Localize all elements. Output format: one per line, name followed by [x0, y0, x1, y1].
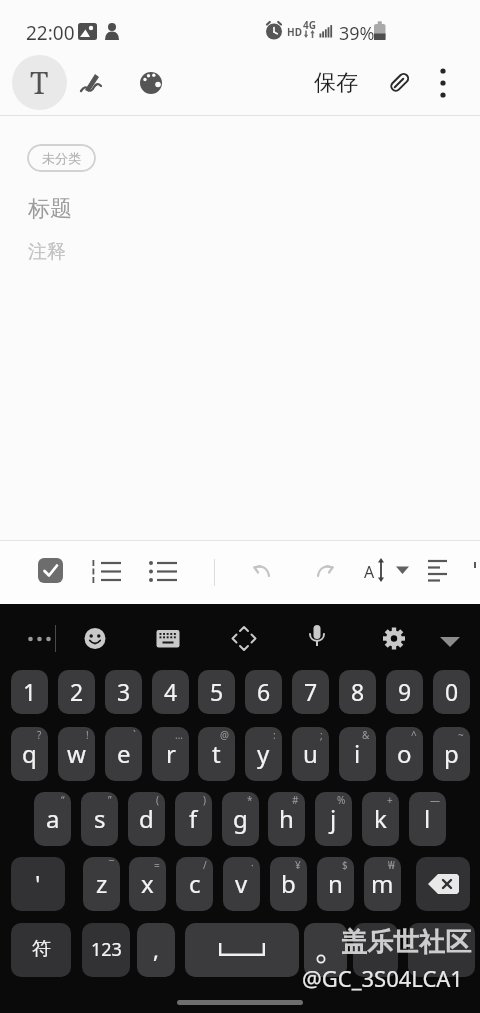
button[interactable]: a: [34, 792, 71, 846]
button[interactable]: 4: [152, 670, 189, 714]
button[interactable]: ,: [137, 923, 175, 977]
button[interactable]: [88, 555, 124, 589]
staticText: r: [166, 737, 176, 770]
button[interactable]: A: [360, 554, 416, 590]
button[interactable]: 0: [433, 670, 470, 714]
staticText: b: [281, 867, 296, 900]
button[interactable]: i: [339, 727, 376, 781]
staticText: p: [444, 737, 459, 770]
staticText: n: [328, 867, 343, 900]
staticText: a: [46, 802, 60, 835]
button[interactable]: [38, 558, 63, 583]
button[interactable]: v: [223, 857, 260, 911]
staticText: ): [203, 793, 206, 807]
button[interactable]: c: [176, 857, 213, 911]
staticText: “: [61, 793, 65, 807]
staticText: ₩: [388, 858, 395, 872]
staticText: 8: [351, 676, 365, 707]
button[interactable]: e: [105, 727, 142, 781]
button[interactable]: l: [409, 792, 446, 846]
button[interactable]: [248, 558, 275, 585]
staticText: ”: [108, 793, 112, 807]
staticText: T: [30, 62, 49, 103]
button[interactable]: k: [362, 792, 399, 846]
button[interactable]: [152, 622, 184, 654]
staticText: u: [303, 737, 318, 770]
staticText: d: [139, 802, 154, 835]
button[interactable]: [304, 923, 347, 977]
button[interactable]: y: [245, 727, 282, 781]
button[interactable]: [138, 69, 165, 96]
staticText: k: [374, 802, 387, 835]
button[interactable]: [408, 923, 475, 977]
staticText: @GC_3S04LCA1: [302, 963, 463, 993]
button[interactable]: [416, 857, 470, 911]
button[interactable]: f: [175, 792, 212, 846]
button[interactable]: x: [129, 857, 166, 911]
button[interactable]: z: [83, 857, 120, 911]
button[interactable]: [300, 620, 334, 654]
button[interactable]: [434, 626, 466, 652]
button[interactable]: n: [317, 857, 354, 911]
button[interactable]: [227, 622, 261, 656]
staticText: ?: [37, 728, 42, 742]
staticText: 4: [164, 676, 178, 707]
button[interactable]: T: [12, 55, 67, 110]
button[interactable]: [78, 622, 112, 656]
button[interactable]: u: [292, 727, 329, 781]
button[interactable]: j: [315, 792, 352, 846]
button[interactable]: q: [11, 727, 48, 781]
button[interactable]: 8: [339, 670, 376, 714]
button[interactable]: [427, 557, 457, 587]
staticText: 7: [304, 676, 318, 707]
button[interactable]: 未分类: [27, 144, 96, 172]
button[interactable]: [312, 558, 339, 585]
button[interactable]: 7: [292, 670, 329, 714]
button[interactable]: 123: [82, 923, 130, 977]
button[interactable]: 保存: [308, 66, 364, 100]
staticText: 5: [210, 676, 224, 707]
button[interactable]: b: [270, 857, 307, 911]
button[interactable]: [79, 69, 106, 96]
staticText: f: [189, 802, 198, 835]
staticText: %: [337, 793, 346, 807]
staticText: ¥: [295, 858, 301, 872]
button[interactable]: w: [58, 727, 95, 781]
staticText: 22:00: [26, 20, 75, 46]
button[interactable]: o: [386, 727, 423, 781]
button[interactable]: 3: [105, 670, 142, 714]
staticText: ¯: [109, 858, 114, 872]
button[interactable]: [353, 923, 398, 977]
staticText: #: [292, 793, 299, 807]
staticText: !: [86, 728, 89, 742]
button[interactable]: 符: [11, 923, 71, 977]
button[interactable]: m: [364, 857, 401, 911]
staticText: ,: [153, 934, 159, 964]
button[interactable]: 6: [245, 670, 282, 714]
button[interactable]: [20, 614, 60, 658]
button[interactable]: t: [198, 727, 235, 781]
button[interactable]: [384, 68, 414, 98]
button[interactable]: r: [152, 727, 189, 781]
button[interactable]: [429, 62, 457, 104]
staticText: 6: [257, 676, 271, 707]
button[interactable]: [474, 560, 480, 584]
staticText: s: [94, 802, 106, 835]
button[interactable]: 9: [386, 670, 423, 714]
button[interactable]: s: [81, 792, 118, 846]
button[interactable]: p: [433, 727, 470, 781]
button[interactable]: [185, 923, 299, 977]
button[interactable]: [146, 555, 180, 589]
button[interactable]: g: [222, 792, 259, 846]
staticText: ': [35, 867, 41, 900]
button[interactable]: [377, 622, 411, 656]
button[interactable]: ': [11, 857, 65, 911]
button[interactable]: h: [268, 792, 305, 846]
button[interactable]: d: [128, 792, 165, 846]
button[interactable]: 5: [198, 670, 235, 714]
button[interactable]: 1: [11, 670, 48, 714]
button[interactable]: 2: [58, 670, 95, 714]
staticText: e: [117, 737, 131, 770]
staticText: /: [203, 858, 207, 872]
staticText: 1: [23, 676, 37, 707]
